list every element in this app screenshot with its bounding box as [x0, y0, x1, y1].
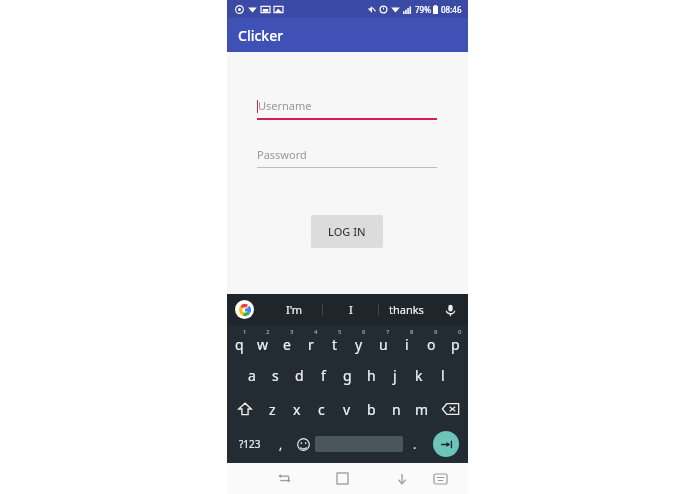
staticText: i	[405, 335, 409, 354]
staticText: Username	[258, 98, 312, 113]
button[interactable]: n	[384, 392, 409, 426]
button[interactable]: LOG IN	[311, 215, 383, 248]
staticText: thanks	[389, 302, 424, 317]
button[interactable]: Google	[235, 300, 254, 319]
button[interactable]: ?123	[230, 426, 269, 462]
staticText: q	[235, 335, 244, 354]
button[interactable]: Backspace	[434, 392, 466, 426]
button[interactable]: u	[371, 325, 395, 359]
staticText: LOG IN	[328, 224, 366, 239]
staticText: t	[332, 335, 338, 354]
staticText: 2	[266, 328, 270, 336]
staticText: v	[343, 400, 351, 419]
button[interactable]: Voice input	[440, 300, 460, 320]
staticText: 79%	[415, 4, 431, 15]
staticText: m	[415, 400, 429, 419]
staticText: Password	[257, 147, 307, 162]
button[interactable]: ,	[269, 426, 292, 462]
staticText: f	[321, 366, 326, 385]
staticText: y	[355, 335, 363, 354]
staticText: 5	[338, 328, 342, 336]
button[interactable]: s	[263, 359, 287, 392]
staticText: s	[272, 366, 279, 385]
button[interactable]: Username	[257, 98, 437, 120]
staticText: d	[295, 366, 304, 385]
staticText: r	[308, 335, 314, 354]
button[interactable]: x	[284, 392, 309, 426]
staticText: x	[293, 400, 301, 419]
button[interactable]: p	[443, 325, 467, 359]
staticText: .	[413, 436, 417, 452]
button[interactable]: Password	[257, 147, 437, 168]
button[interactable]: Home	[324, 463, 361, 494]
staticText: h	[367, 366, 376, 385]
staticText: 3	[290, 328, 294, 336]
staticText: w	[257, 335, 269, 354]
button[interactable]: v	[334, 392, 359, 426]
staticText: n	[392, 400, 401, 419]
button[interactable]: thanks	[379, 294, 434, 325]
staticText: 9	[434, 328, 438, 336]
button[interactable]: Switch keyboard	[422, 463, 459, 494]
staticText: 0	[458, 328, 462, 336]
button[interactable]: c	[309, 392, 334, 426]
button[interactable]: Shift	[229, 392, 260, 426]
button[interactable]: d	[287, 359, 311, 392]
button[interactable]: m	[409, 392, 434, 426]
staticText: j	[393, 366, 397, 385]
button[interactable]: h	[359, 359, 383, 392]
staticText: k	[415, 366, 423, 385]
staticText: b	[367, 400, 376, 419]
button[interactable]: y	[347, 325, 371, 359]
staticText: 08:46	[441, 4, 462, 15]
button[interactable]: j	[383, 359, 407, 392]
staticText: a	[248, 366, 256, 385]
button[interactable]: o	[419, 325, 443, 359]
button[interactable]: k	[407, 359, 431, 392]
button[interactable]: Emoji	[292, 426, 315, 462]
button[interactable]: I	[323, 294, 378, 325]
button[interactable]: b	[359, 392, 384, 426]
staticText: z	[269, 400, 276, 419]
staticText: 1	[243, 328, 247, 336]
staticText: 6	[362, 328, 366, 336]
button[interactable]: z	[260, 392, 284, 426]
staticText: c	[318, 400, 325, 419]
button[interactable]: Recents	[266, 463, 302, 494]
staticText: ?123	[239, 437, 261, 451]
button[interactable]: q	[228, 325, 251, 359]
staticText: ,	[279, 436, 283, 452]
button[interactable]: g	[335, 359, 359, 392]
staticText: I'm	[286, 302, 303, 317]
button[interactable]: f	[311, 359, 335, 392]
button[interactable]: .	[403, 426, 426, 462]
button[interactable]: i	[395, 325, 419, 359]
staticText: Clicker	[238, 26, 284, 45]
staticText: p	[451, 335, 460, 354]
staticText: u	[379, 335, 388, 354]
button[interactable]: w	[251, 325, 275, 359]
staticText: o	[427, 335, 436, 354]
staticText: e	[283, 335, 291, 354]
button[interactable]: Enter	[433, 431, 459, 457]
button[interactable]: Hide keyboard	[383, 463, 420, 494]
staticText: 8	[410, 328, 414, 336]
staticText: I	[349, 302, 353, 317]
button[interactable]: a	[240, 359, 263, 392]
staticText: 4	[314, 328, 318, 336]
button[interactable]: I'm	[266, 294, 322, 325]
button[interactable]: t	[323, 325, 347, 359]
staticText: l	[441, 366, 445, 385]
staticText: g	[343, 366, 352, 385]
button[interactable]: e	[275, 325, 299, 359]
button[interactable]: r	[299, 325, 323, 359]
button[interactable]: l	[431, 359, 455, 392]
staticText: 7	[386, 328, 390, 336]
